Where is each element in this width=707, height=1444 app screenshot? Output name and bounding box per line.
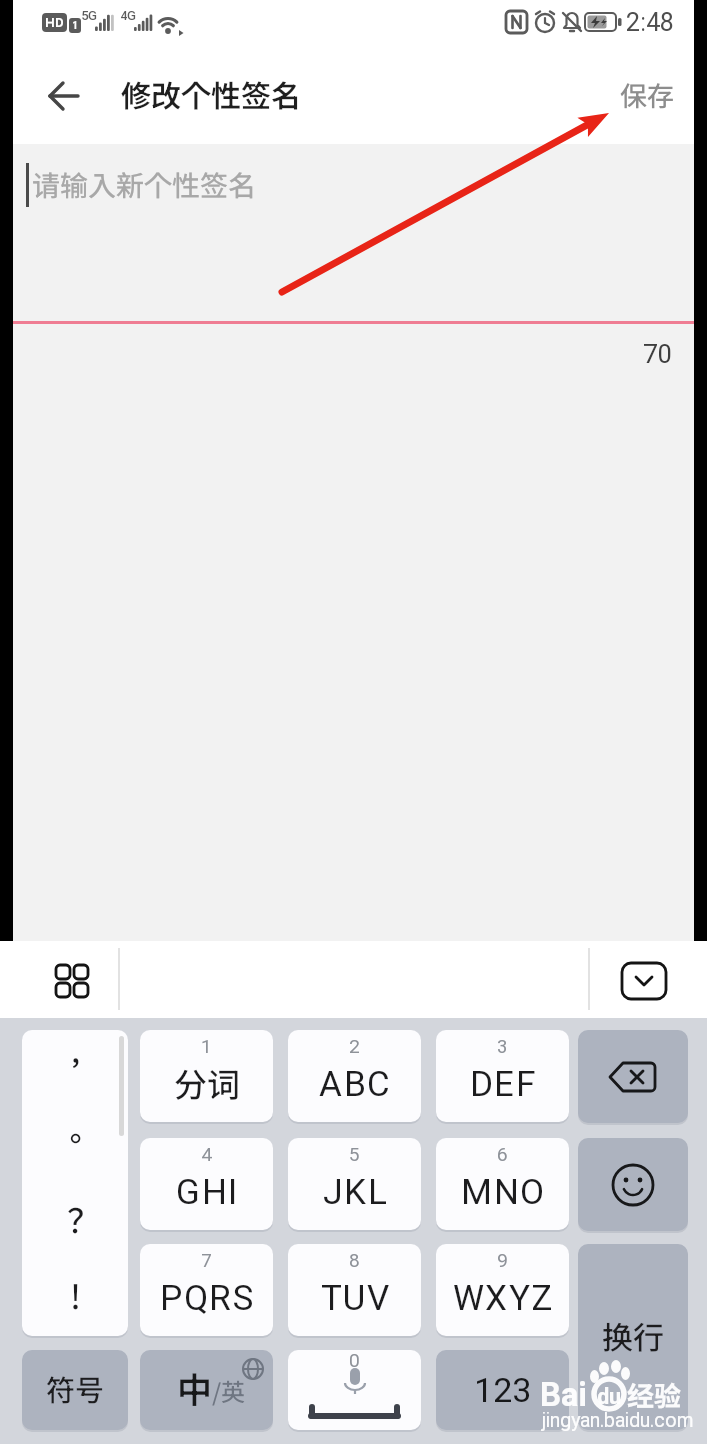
button[interactable]	[618, 956, 670, 1006]
button[interactable]	[578, 1138, 688, 1231]
button[interactable]	[288, 1138, 421, 1230]
button[interactable]	[288, 1244, 421, 1336]
button[interactable]	[140, 1030, 273, 1122]
button[interactable]	[22, 1350, 128, 1430]
button[interactable]	[436, 1350, 569, 1430]
button[interactable]	[22, 1030, 128, 1336]
button[interactable]	[140, 1244, 273, 1336]
button[interactable]	[140, 1350, 273, 1430]
button[interactable]	[0, 144, 707, 941]
button[interactable]	[44, 76, 84, 116]
button[interactable]	[436, 1244, 569, 1336]
button[interactable]	[288, 1350, 421, 1430]
button[interactable]	[612, 74, 676, 118]
button[interactable]	[436, 1138, 569, 1230]
button[interactable]	[46, 956, 98, 1006]
button[interactable]	[140, 1138, 273, 1230]
button[interactable]	[288, 1030, 421, 1122]
button[interactable]	[578, 1030, 688, 1123]
button[interactable]	[436, 1030, 569, 1122]
button[interactable]	[578, 1244, 688, 1430]
